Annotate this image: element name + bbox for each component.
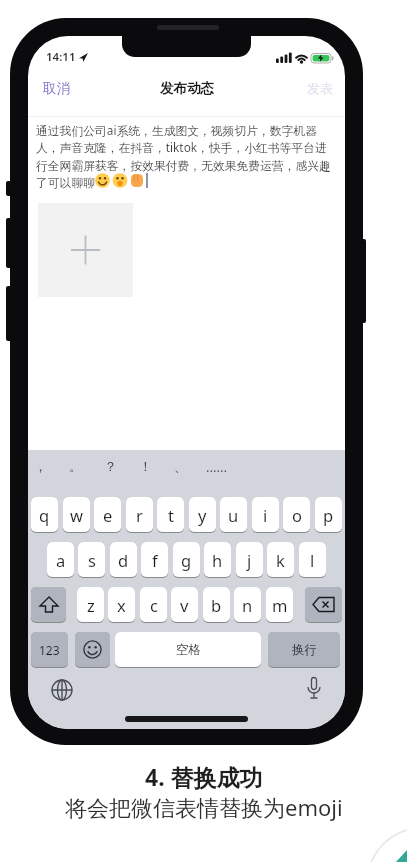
staticText: 发表 xyxy=(307,80,333,96)
button[interactable]: s xyxy=(78,542,105,577)
button[interactable]: 取消 xyxy=(43,80,70,97)
button[interactable]: o xyxy=(283,497,310,532)
staticText: y xyxy=(198,504,207,526)
staticText: ？ xyxy=(104,458,117,474)
button[interactable]: q xyxy=(31,497,58,532)
button[interactable]: k xyxy=(267,542,294,577)
staticText: w xyxy=(70,504,83,526)
button[interactable]: 空格 xyxy=(115,632,261,667)
button[interactable]: w xyxy=(63,497,90,532)
button[interactable]: p xyxy=(315,497,342,532)
staticText: z xyxy=(87,594,95,616)
staticText: n xyxy=(242,594,253,616)
staticText: l xyxy=(310,549,315,571)
button[interactable]: 发表 xyxy=(307,80,333,96)
staticText: b xyxy=(211,594,222,616)
button[interactable]: z xyxy=(77,587,104,622)
staticText: ， xyxy=(34,458,47,474)
staticText: 空格 xyxy=(176,642,201,658)
button[interactable]: g xyxy=(173,542,200,577)
staticText: 发布动态 xyxy=(160,80,214,97)
staticText: d xyxy=(118,549,129,571)
staticText: s xyxy=(88,549,96,571)
staticText: 、 xyxy=(174,458,187,474)
staticText: v xyxy=(180,594,189,616)
button[interactable] xyxy=(38,203,133,297)
button[interactable]: m xyxy=(266,587,293,622)
button[interactable]: v xyxy=(171,587,198,622)
button[interactable]: j xyxy=(236,542,263,577)
button[interactable]: u xyxy=(220,497,247,532)
staticText: i xyxy=(263,504,268,526)
button[interactable]: y xyxy=(189,497,216,532)
button[interactable]: b xyxy=(203,587,230,622)
staticText: ...... xyxy=(206,458,227,476)
staticText: ！ xyxy=(139,458,152,474)
staticText: c xyxy=(150,594,158,616)
button[interactable] xyxy=(305,587,342,622)
staticText: 将会把微信表情替换为emoji xyxy=(65,792,343,822)
staticText: 123 xyxy=(39,642,60,658)
staticText: e xyxy=(103,504,113,526)
button[interactable]: h xyxy=(204,542,231,577)
staticText: 4. 替换成功 xyxy=(145,761,263,792)
button[interactable]: t xyxy=(157,497,184,532)
button[interactable]: 换行 xyxy=(268,632,340,667)
button[interactable]: i xyxy=(252,497,279,532)
staticText: 通过我们公司ai系统，生成图文，视频切片，数字机器 人，声音克隆，在抖音，tik… xyxy=(36,122,331,190)
staticText: u xyxy=(228,504,239,526)
button[interactable]: a xyxy=(47,542,74,577)
button[interactable]: d xyxy=(110,542,137,577)
button[interactable]: e xyxy=(94,497,121,532)
staticText: m xyxy=(272,594,288,616)
button[interactable]: 123 xyxy=(31,632,68,667)
staticText: o xyxy=(292,504,302,526)
button[interactable]: x xyxy=(108,587,135,622)
button[interactable] xyxy=(75,632,110,667)
button[interactable]: l xyxy=(299,542,326,577)
staticText: a xyxy=(56,549,66,571)
button[interactable]: n xyxy=(234,587,261,622)
button[interactable]: f xyxy=(141,542,168,577)
staticText: k xyxy=(276,549,285,571)
staticText: f xyxy=(152,549,158,571)
staticText: t xyxy=(168,504,174,526)
button[interactable] xyxy=(31,587,66,622)
staticText: r xyxy=(136,504,143,526)
staticText: p xyxy=(323,504,334,526)
staticText: h xyxy=(212,549,223,571)
staticText: 换行 xyxy=(292,642,317,658)
staticText: j xyxy=(247,549,252,571)
staticText: q xyxy=(39,504,50,526)
staticText: 14:11 xyxy=(46,49,76,65)
staticText: 取消 xyxy=(43,80,70,97)
staticText: g xyxy=(181,549,192,571)
button[interactable]: r xyxy=(126,497,153,532)
button[interactable]: c xyxy=(140,587,167,622)
staticText: 。 xyxy=(69,458,82,474)
staticText: x xyxy=(117,594,126,616)
